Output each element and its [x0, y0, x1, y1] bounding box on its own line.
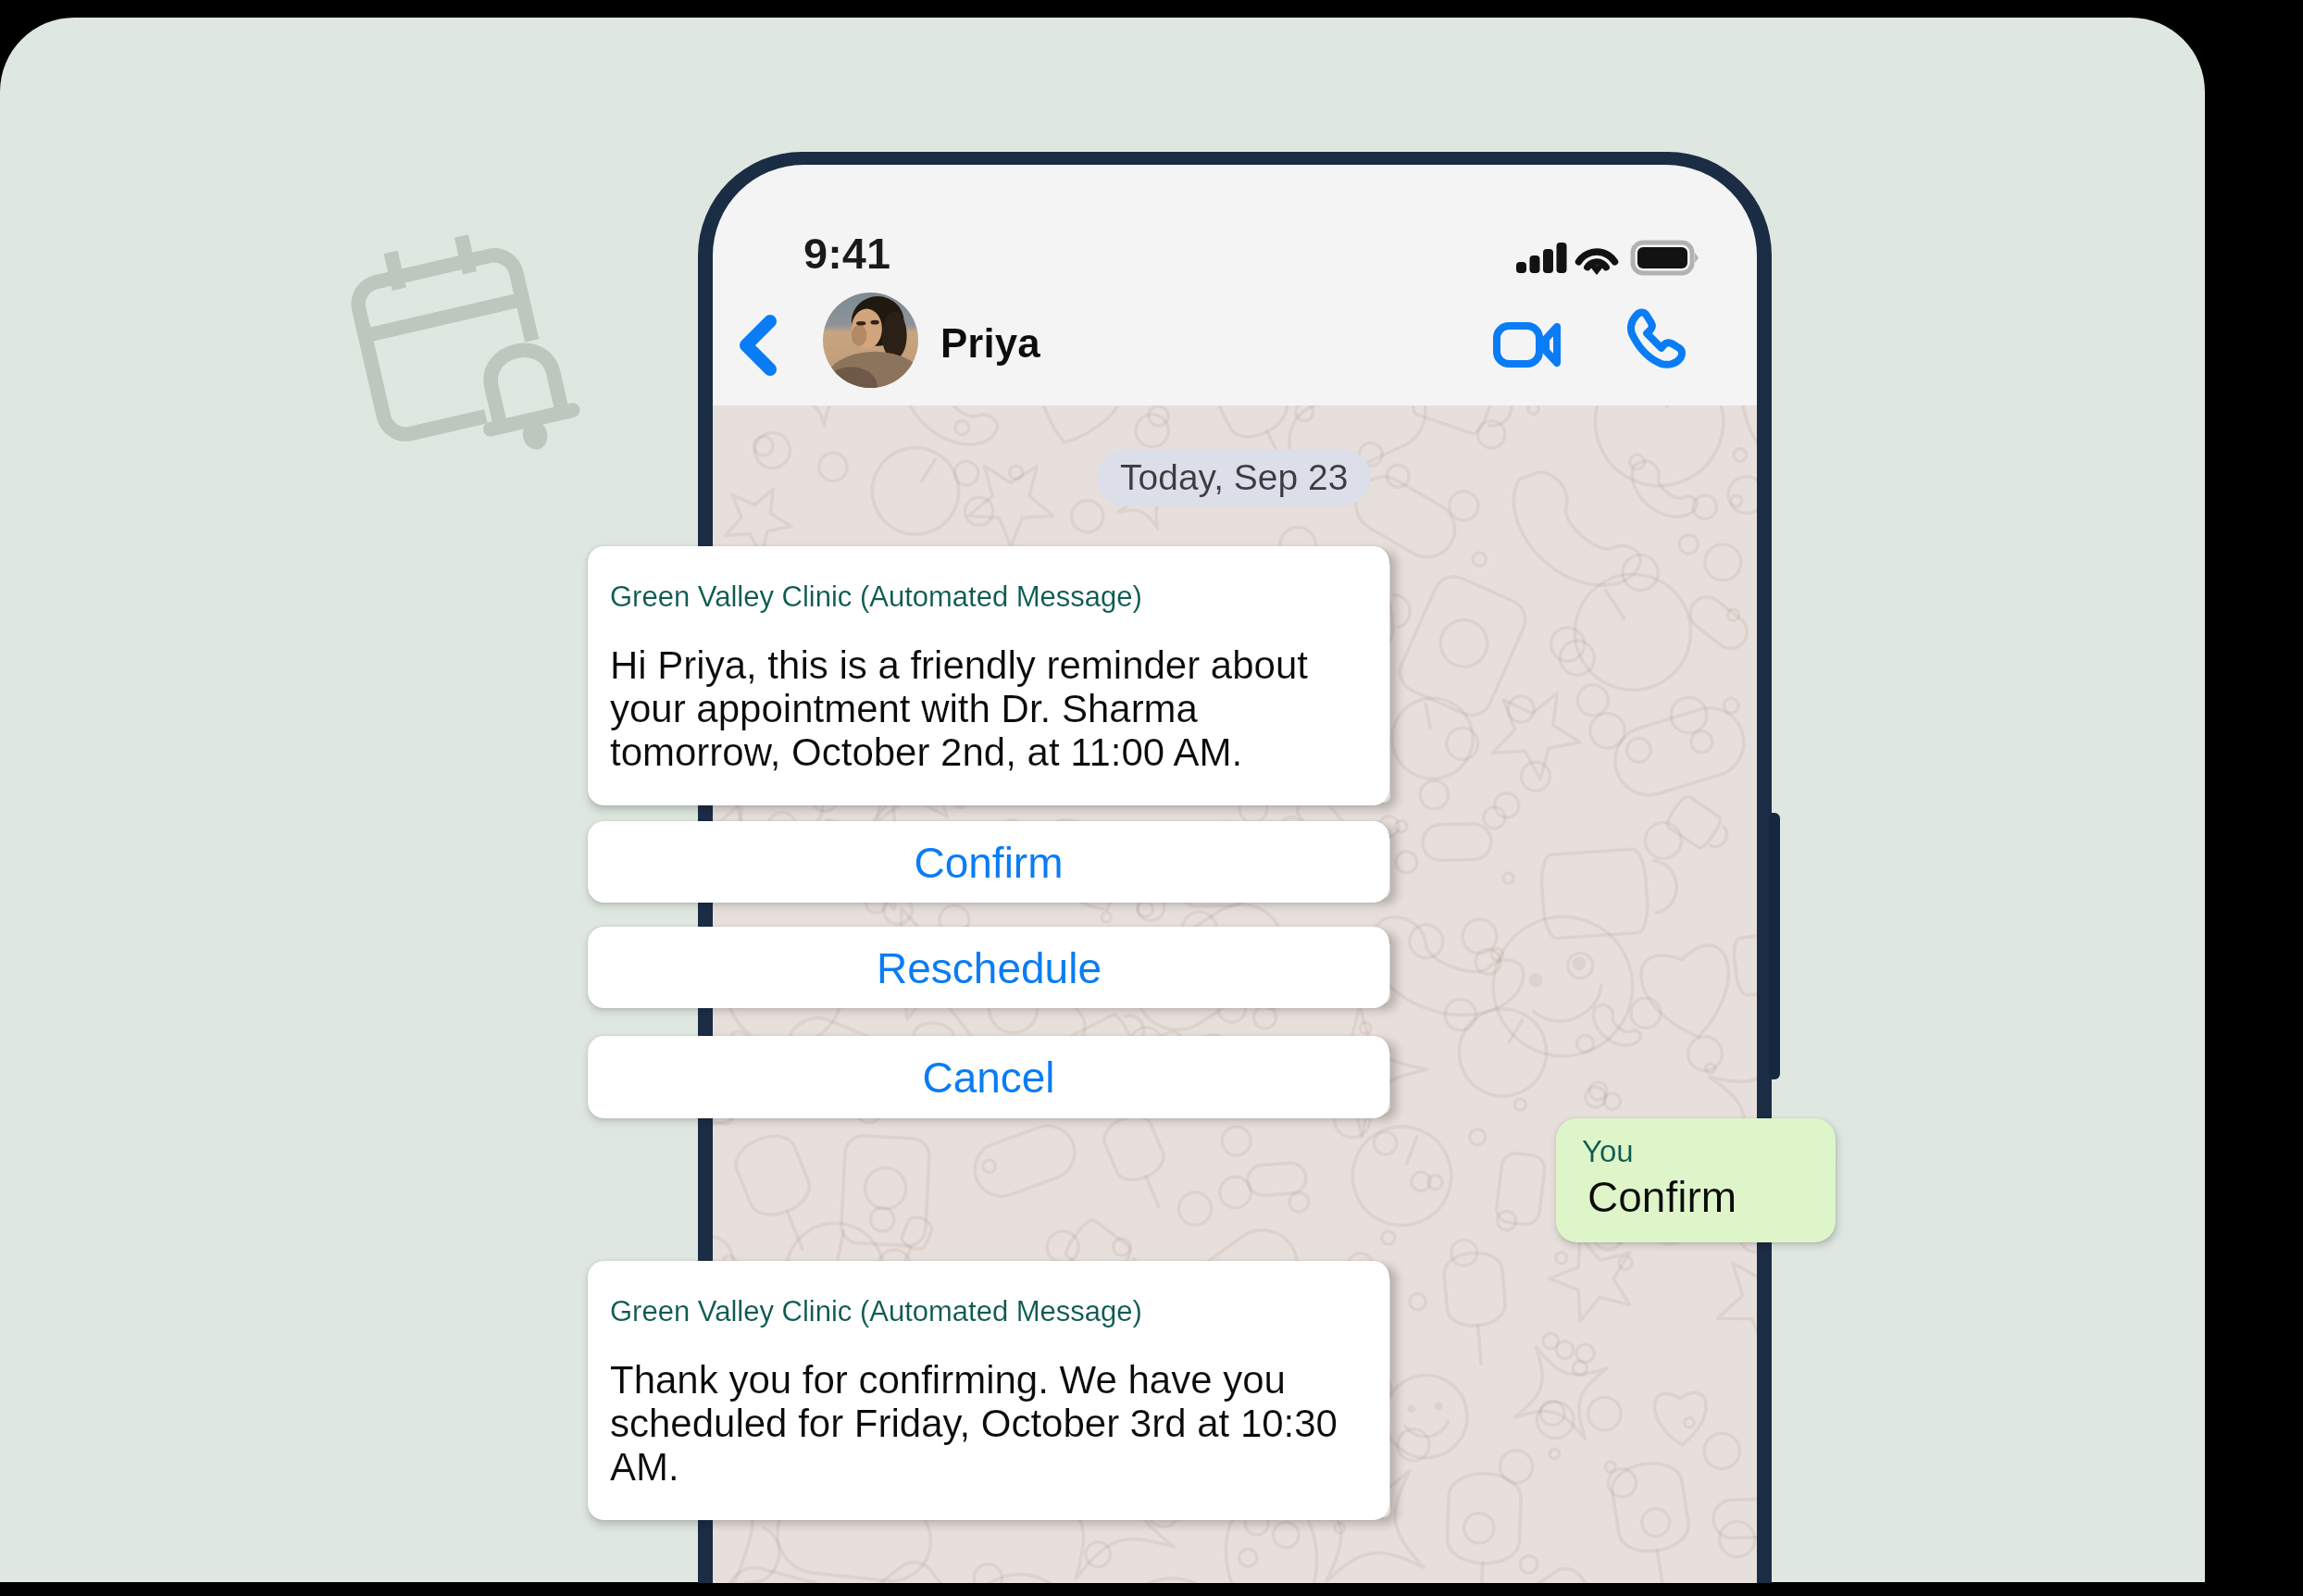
button[interactable]: Priya profile photo [823, 293, 918, 388]
button[interactable]: Video call [1476, 305, 1576, 383]
staticText: Cancel [922, 1054, 1055, 1101]
button[interactable]: Back [722, 301, 792, 390]
staticText: You [1582, 1134, 1634, 1168]
button[interactable]: Today, Sep 23 [1097, 449, 1371, 506]
staticText: Reschedule [877, 944, 1102, 991]
button[interactable]: Reschedule [588, 927, 1389, 1008]
staticText: Today, Sep 23 [1120, 457, 1349, 498]
staticText: Confirm [1587, 1173, 1737, 1220]
button[interactable]: Green Valley Clinic (Automated Message) [588, 546, 1389, 805]
button[interactable]: You [1556, 1118, 1836, 1242]
staticText: Green Valley Clinic (Automated Message) [610, 580, 1142, 613]
staticText: Hi Priya, this is a friendly reminder ab… [610, 643, 1355, 774]
button[interactable]: Confirm [588, 821, 1389, 903]
staticText: 9:41 [803, 229, 891, 278]
staticText: Confirm [914, 839, 1064, 886]
button[interactable]: Voice call [1613, 299, 1699, 379]
staticText: Thank you for confirming. We have you sc… [610, 1358, 1355, 1489]
staticText: Green Valley Clinic (Automated Message) [610, 1295, 1142, 1328]
button[interactable]: Cancel [588, 1036, 1389, 1118]
button[interactable]: Priya [940, 320, 1040, 366]
button[interactable]: Green Valley Clinic (Automated Message) [588, 1261, 1389, 1520]
